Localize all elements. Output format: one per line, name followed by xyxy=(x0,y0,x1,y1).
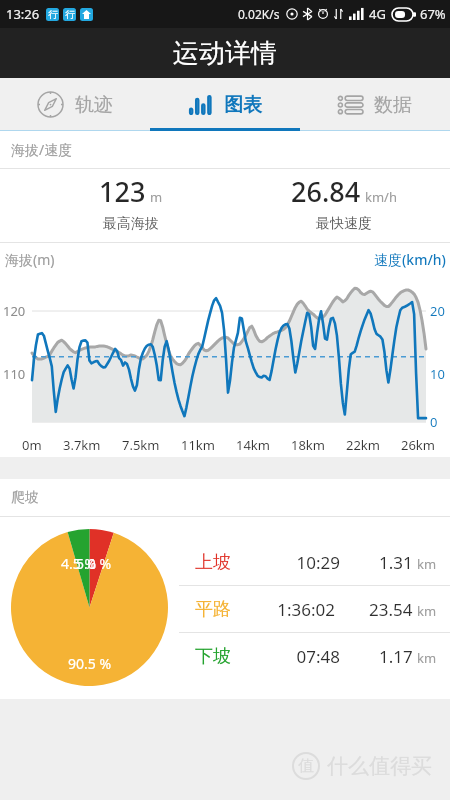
staticText: 下坡 xyxy=(195,645,231,668)
staticText: 1.17 xyxy=(379,645,413,668)
staticText: 0m xyxy=(22,436,42,454)
staticText: 23.54 xyxy=(369,598,413,621)
staticText: 120 xyxy=(3,302,26,320)
button[interactable]: 上坡 xyxy=(179,539,437,585)
staticText: 4G xyxy=(369,5,386,23)
button[interactable]: 下坡 xyxy=(179,633,437,679)
staticText: 26km xyxy=(401,436,435,454)
staticText: km xyxy=(417,649,437,667)
staticText: 海拔/速度 xyxy=(11,140,73,159)
staticText: 3.7km xyxy=(63,436,101,454)
staticText: 22km xyxy=(346,436,380,454)
staticText: 7.5km xyxy=(122,436,160,454)
staticText: 1:36:02 xyxy=(261,598,335,621)
staticText: 最高海拔 xyxy=(103,215,159,233)
staticText: km xyxy=(417,555,437,573)
staticText: m xyxy=(150,188,163,206)
staticText: 海拔(m) xyxy=(5,250,55,269)
staticText: 数据 xyxy=(374,93,412,117)
staticText: 13:26 xyxy=(6,5,40,23)
staticText: 上坡 xyxy=(195,551,231,574)
staticText: km xyxy=(417,602,437,620)
staticText: 18km xyxy=(291,436,325,454)
staticText: 速度(km/h) xyxy=(374,250,446,269)
staticText: 4.5 % xyxy=(61,554,97,573)
staticText: 67% xyxy=(420,5,446,23)
staticText: 10:29 xyxy=(266,551,340,574)
staticText: 90.5 % xyxy=(68,654,112,673)
staticText: 运动详情 xyxy=(173,37,277,70)
staticText: 11km xyxy=(181,436,215,454)
staticText: 10 xyxy=(430,365,445,383)
staticText: 图表 xyxy=(224,93,262,117)
staticText: km/h xyxy=(365,188,397,206)
staticText: 轨迹 xyxy=(75,93,113,117)
staticText: 26.84 xyxy=(291,173,361,210)
staticText: 平路 xyxy=(195,598,231,621)
staticText: 20 xyxy=(430,302,445,320)
staticText: 5.0 % xyxy=(76,554,112,573)
staticText: 行 xyxy=(65,8,75,21)
button[interactable]: 数据 xyxy=(300,78,450,131)
staticText: 爬坡 xyxy=(11,489,39,507)
button[interactable]: 轨迹 xyxy=(0,78,150,131)
staticText: 0.02K/s xyxy=(238,6,280,22)
button[interactable]: 平路 xyxy=(179,586,437,632)
staticText: 0 xyxy=(430,413,438,431)
staticText: 07:48 xyxy=(266,645,340,668)
staticText: 1.31 xyxy=(379,551,413,574)
staticText: 行 xyxy=(48,8,58,21)
button[interactable]: 图表 xyxy=(150,78,300,131)
staticText: 值 xyxy=(298,756,314,776)
staticText: 最快速度 xyxy=(316,215,372,233)
staticText: 123 xyxy=(99,173,146,210)
staticText: 14km xyxy=(236,436,270,454)
staticText: 什么值得买 xyxy=(327,753,432,779)
staticText: 110 xyxy=(3,365,26,383)
